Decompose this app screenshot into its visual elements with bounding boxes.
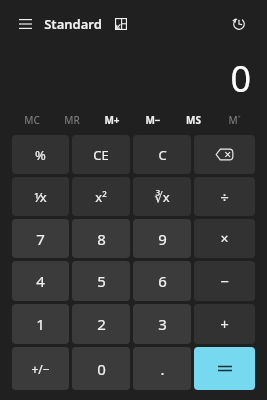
button[interactable]: M˅ — [214, 109, 255, 131]
button[interactable]: 5 — [72, 261, 130, 301]
button[interactable]: 0 — [72, 347, 130, 390]
button[interactable]: . — [133, 347, 191, 390]
staticText: ∛x — [154, 188, 170, 206]
button[interactable]: 9 — [133, 219, 191, 258]
button[interactable]: ∛x — [133, 177, 191, 216]
staticText: 1 — [36, 314, 45, 334]
staticText: × — [220, 229, 229, 248]
button[interactable]: MS — [173, 109, 214, 131]
button[interactable]: 3 — [133, 304, 191, 344]
button[interactable]: Menu — [14, 13, 36, 35]
staticText: MS — [186, 113, 201, 127]
button[interactable]: 1 — [12, 304, 69, 344]
button[interactable]: % — [12, 135, 69, 174]
staticText: 7 — [36, 229, 45, 249]
staticText: 6 — [158, 271, 167, 291]
button[interactable]: × — [194, 219, 255, 258]
staticText: 0 — [97, 359, 106, 379]
staticText: − — [220, 271, 229, 291]
staticText: 5 — [97, 271, 106, 291]
button[interactable]: 2 — [72, 304, 130, 344]
button[interactable]: History — [227, 12, 251, 36]
staticText: 3 — [158, 314, 167, 334]
staticText: +/− — [31, 361, 50, 377]
button[interactable]: + — [194, 304, 255, 344]
staticText: 4 — [36, 271, 45, 291]
button[interactable]: 6 — [133, 261, 191, 301]
staticText: 8 — [97, 229, 106, 249]
staticText: 9 — [158, 229, 167, 249]
button[interactable]: Keep on top — [111, 14, 131, 34]
staticText: ÷ — [220, 187, 229, 207]
button[interactable]: Backspace — [194, 135, 255, 174]
staticText: MC — [24, 113, 40, 127]
staticText: 2 — [97, 314, 106, 334]
button[interactable]: Equals — [194, 347, 255, 390]
button[interactable]: ⅟x — [12, 177, 69, 216]
staticText: M− — [145, 113, 161, 127]
button[interactable]: x² — [72, 177, 130, 216]
staticText: % — [35, 146, 46, 164]
staticText: M+ — [104, 113, 120, 127]
staticText: + — [220, 314, 229, 334]
button[interactable]: CE — [72, 135, 130, 174]
staticText: C — [158, 146, 167, 164]
staticText: 0 — [230, 54, 251, 103]
button[interactable]: − — [194, 261, 255, 301]
button[interactable]: C — [133, 135, 191, 174]
button[interactable]: MC — [12, 109, 52, 131]
button[interactable]: M+ — [92, 109, 132, 131]
staticText: x² — [95, 188, 107, 206]
button[interactable]: M− — [132, 109, 173, 131]
button[interactable]: MR — [52, 109, 92, 131]
button[interactable]: +/− — [12, 347, 69, 390]
staticText: MR — [64, 113, 80, 127]
staticText: M˅ — [228, 113, 241, 127]
button[interactable]: 7 — [12, 219, 69, 258]
staticText: . — [160, 359, 165, 379]
button[interactable]: ÷ — [194, 177, 255, 216]
staticText: CE — [93, 146, 109, 164]
staticText: Standard — [44, 15, 102, 33]
button[interactable]: 8 — [72, 219, 130, 258]
staticText: ⅟x — [34, 188, 47, 206]
button[interactable]: 4 — [12, 261, 69, 301]
